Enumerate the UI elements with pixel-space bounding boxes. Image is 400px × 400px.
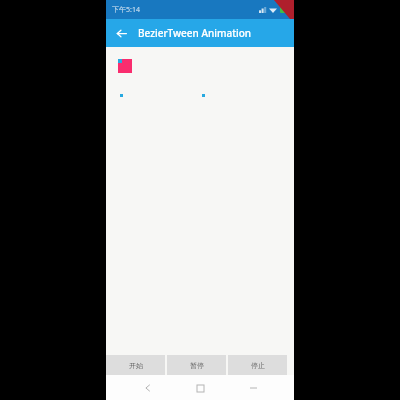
button[interactable]: Back (137, 377, 159, 399)
staticText: BezierTween Animation (138, 26, 252, 40)
button[interactable]: 停止 (228, 355, 287, 375)
staticText: 停止 (251, 361, 265, 370)
button[interactable]: 开始 (106, 355, 165, 375)
button[interactable]: 暂停 (167, 355, 226, 375)
staticText: 暂停 (190, 361, 204, 370)
button[interactable]: Home (189, 377, 211, 399)
button[interactable]: Recents (242, 377, 264, 399)
button[interactable]: Back (111, 23, 131, 43)
staticText: 下午5:14 (112, 5, 140, 15)
staticText: 开始 (129, 361, 143, 370)
